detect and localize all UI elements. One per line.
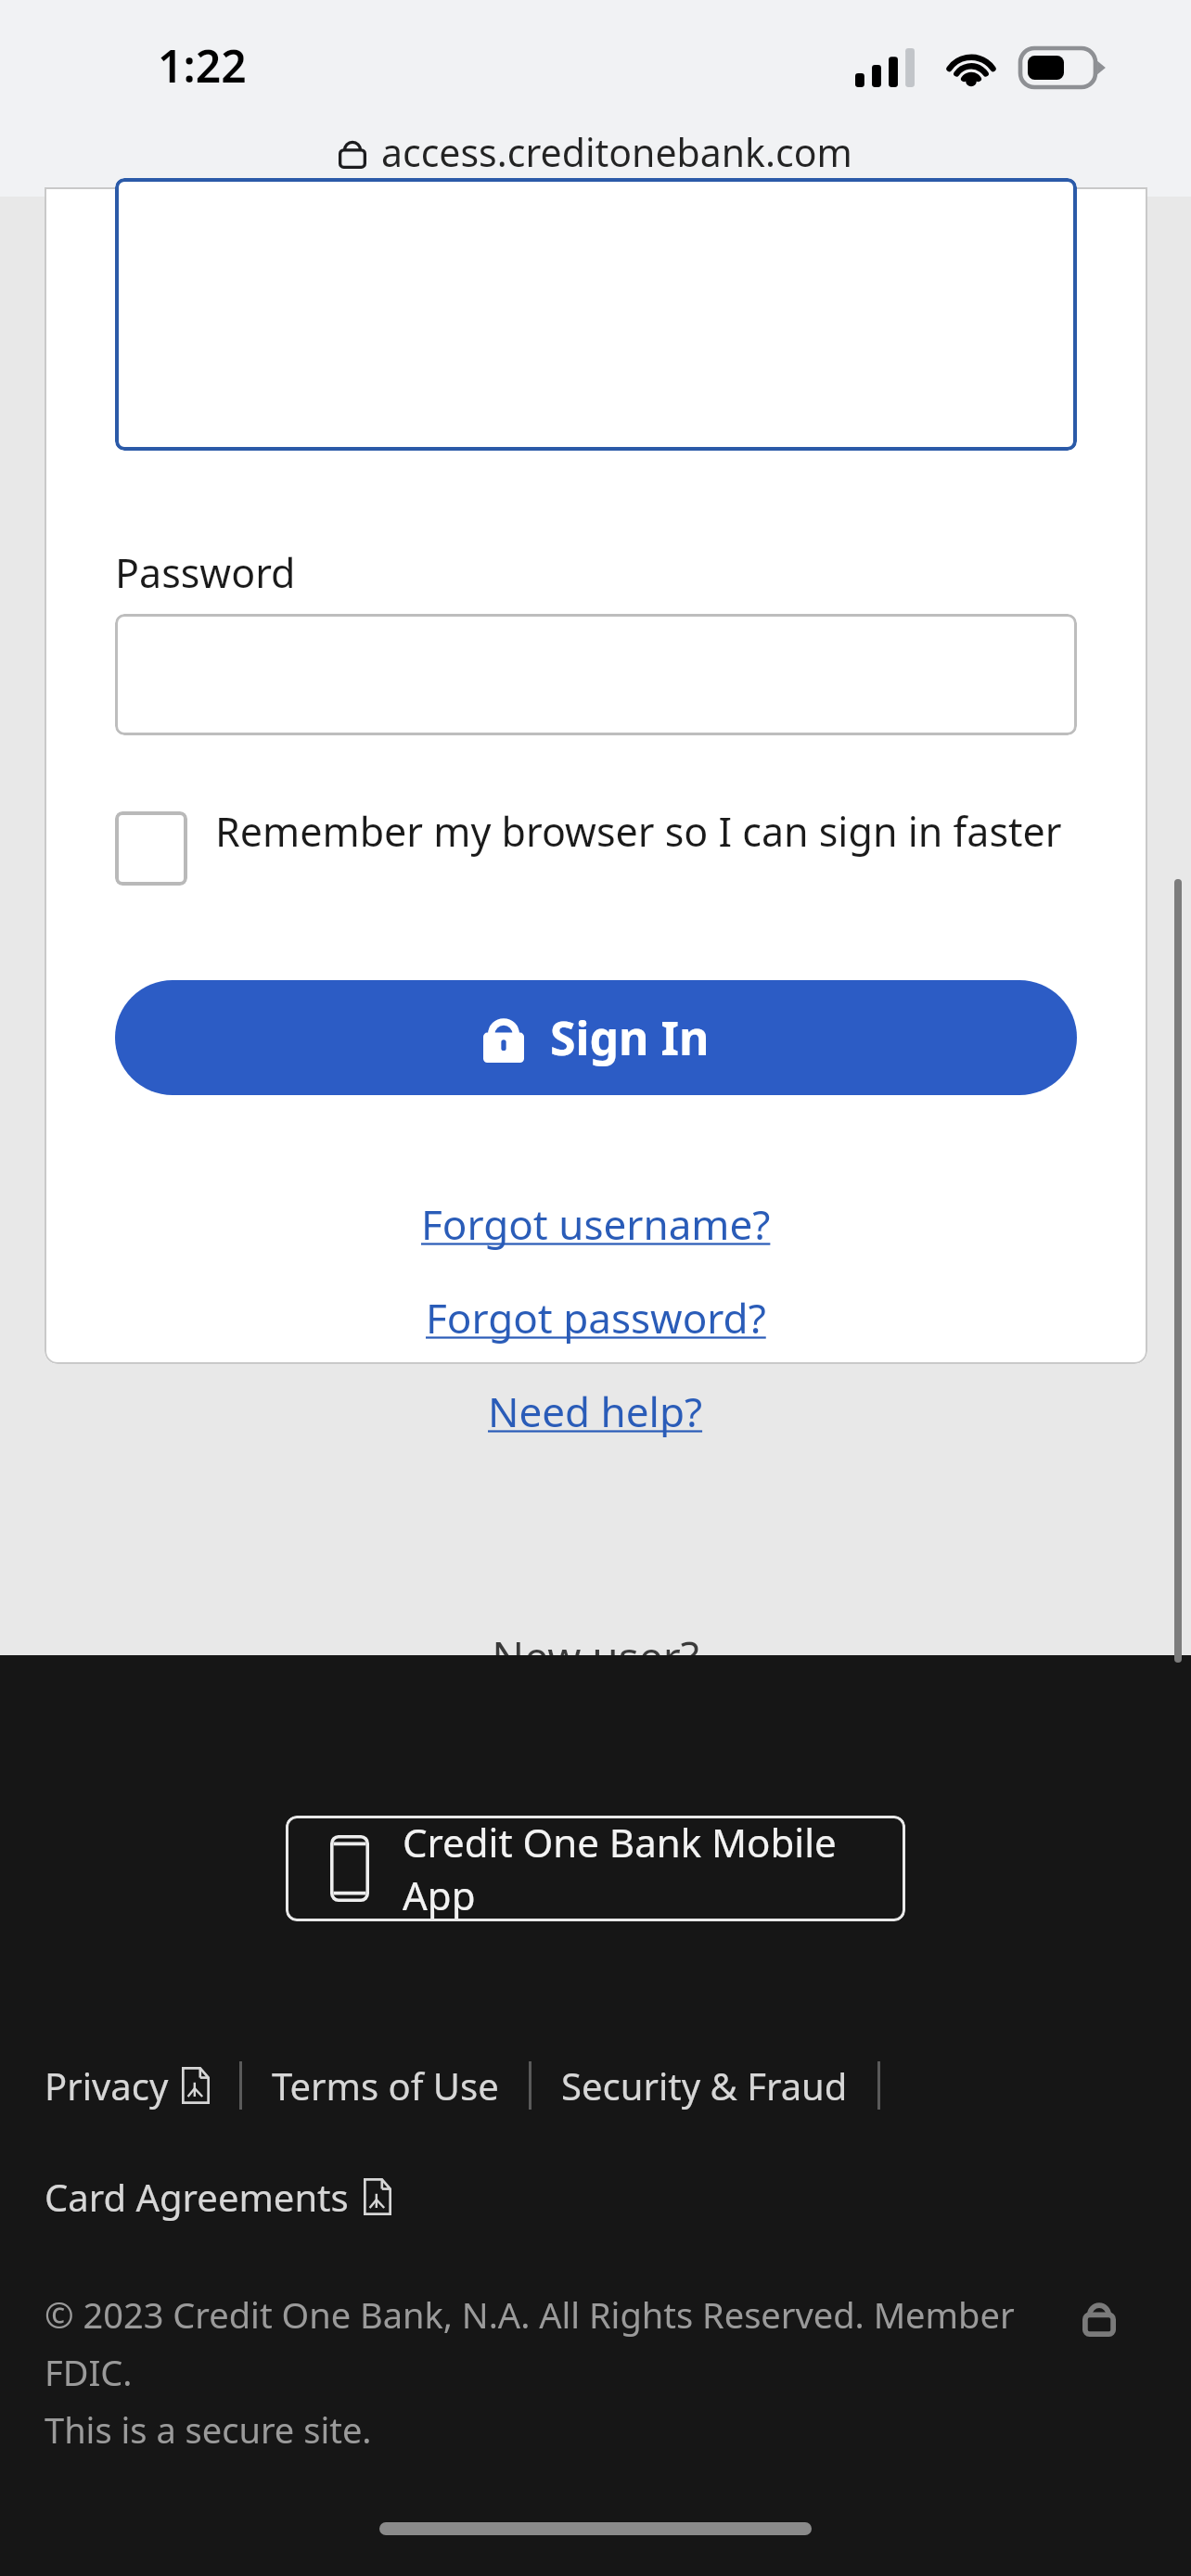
staticText: Sign In	[550, 1006, 710, 1069]
button[interactable]: Forgot password?	[0, 1281, 1191, 1355]
staticText: Card Agreements	[45, 2172, 349, 2222]
staticText: Privacy	[45, 2060, 169, 2111]
staticText: Credit One Bank Mobile App	[403, 1816, 905, 1921]
staticText: Security & Fraud	[561, 2060, 848, 2111]
staticText: 1:22	[158, 35, 247, 96]
button[interactable]: Need help?	[0, 1374, 1191, 1448]
staticText: Need help?	[488, 1384, 703, 1439]
button[interactable]	[115, 178, 1077, 451]
button[interactable]	[115, 614, 1077, 735]
staticText: Terms of Use	[272, 2060, 499, 2111]
button[interactable]: Privacy	[45, 2060, 210, 2111]
staticText: Forgot username?	[421, 1196, 771, 1252]
button[interactable]: Security & Fraud	[561, 2060, 848, 2111]
button[interactable]: Sign In	[115, 980, 1077, 1095]
button[interactable]: Forgot username?	[0, 1187, 1191, 1261]
staticText: New user?	[0, 1627, 1191, 1686]
button[interactable]: Card Agreements	[45, 2172, 391, 2222]
button[interactable]: Terms of Use	[272, 2060, 499, 2111]
staticText: Forgot password?	[426, 1290, 766, 1345]
staticText: © 2023 Credit One Bank, N.A. All Rights …	[45, 2290, 1102, 2454]
button[interactable]: Remember my browser so I can sign in fas…	[115, 804, 1077, 878]
staticText: Remember my browser so I can sign in fas…	[215, 804, 1062, 859]
staticText: access.creditonebank.com	[381, 126, 852, 178]
button[interactable]: Credit One Bank Mobile App	[286, 1816, 905, 1921]
staticText: Password	[115, 545, 296, 600]
